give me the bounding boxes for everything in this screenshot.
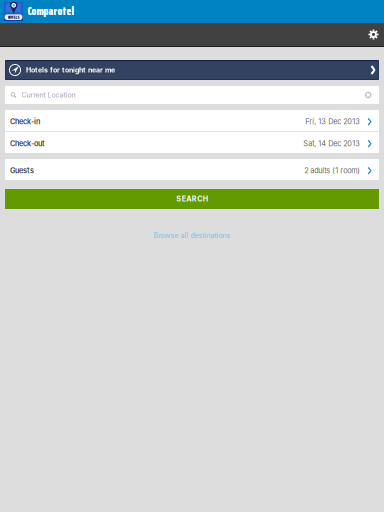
button[interactable]: Check-in — [5, 110, 379, 131]
staticText: Hotels for tonight near me — [26, 66, 115, 74]
staticText: Browse all destinations — [153, 231, 230, 240]
staticText: SEARCH — [176, 195, 208, 203]
staticText: Current Location — [21, 91, 75, 99]
staticText: Fri, 13 Dec 2013 — [305, 117, 360, 126]
staticText: Comparotel — [27, 3, 74, 20]
staticText: Check-in — [10, 117, 40, 126]
staticText: Check-out — [10, 139, 45, 148]
button[interactable]: Current Location — [5, 86, 379, 104]
button[interactable]: Settings — [363, 23, 384, 46]
button[interactable]: Guests — [5, 159, 379, 180]
button[interactable]: Check-out — [5, 132, 379, 153]
button[interactable]: Hotels for tonight near me — [5, 60, 379, 80]
staticText: HOTELS — [7, 14, 19, 21]
button[interactable]: SEARCH — [5, 189, 379, 209]
staticText: Guests — [10, 166, 34, 175]
button[interactable]: Browse all destinations — [0, 231, 384, 240]
staticText: 2 adults (1 room) — [304, 166, 360, 175]
staticText: Sat, 14 Dec 2013 — [303, 139, 360, 148]
